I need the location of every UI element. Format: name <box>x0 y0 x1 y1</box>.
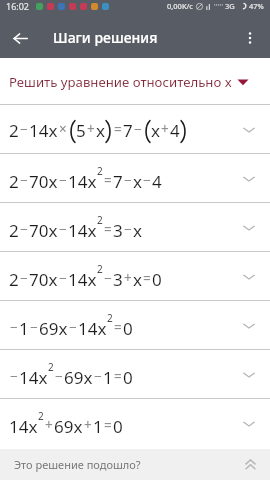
staticText: − <box>20 171 28 189</box>
staticText: 14x <box>68 170 97 193</box>
staticText: − <box>20 120 28 138</box>
staticText: 0 <box>113 415 123 438</box>
staticText: − <box>59 171 67 189</box>
staticText: 14x <box>78 317 107 340</box>
staticText: Это решение подошло? <box>14 457 141 472</box>
button[interactable]: 2 <box>0 154 270 203</box>
staticText: 1 <box>93 415 103 438</box>
staticText: 2 <box>107 311 113 325</box>
staticText: = <box>104 416 112 434</box>
button[interactable]: Это решение подошло? <box>0 449 270 480</box>
button[interactable]: 2 <box>0 203 270 252</box>
button[interactable]: − <box>0 301 270 350</box>
staticText: − <box>69 318 77 336</box>
staticText: = <box>114 367 122 385</box>
staticText: = <box>114 120 122 138</box>
staticText: 16:02 <box>6 0 30 12</box>
staticText: = <box>114 318 122 336</box>
staticText: + <box>161 120 169 138</box>
staticText: 2 <box>9 268 19 291</box>
staticText: − <box>10 367 18 385</box>
staticText: 4 <box>152 170 162 193</box>
staticText: + <box>87 120 95 138</box>
staticText: 0 <box>123 317 133 340</box>
staticText: 14x <box>68 268 97 291</box>
staticText: x <box>133 268 142 291</box>
staticText: − <box>20 220 28 238</box>
staticText: 2 <box>9 219 19 242</box>
staticText: 2 <box>38 409 44 423</box>
staticText: = <box>104 220 112 238</box>
staticText: × <box>59 120 67 138</box>
staticText: − <box>124 220 132 238</box>
staticText: 0 <box>152 268 162 291</box>
staticText: 1 <box>19 317 29 340</box>
staticText: 0 <box>123 366 133 389</box>
staticText: − <box>104 269 112 287</box>
staticText: 2 <box>97 164 103 178</box>
staticText: 2 <box>48 360 54 374</box>
staticText: x <box>151 119 160 142</box>
button[interactable]: Back <box>0 18 40 58</box>
staticText: − <box>20 269 28 287</box>
staticText: 3G <box>225 1 235 11</box>
staticText: 2 <box>97 213 103 227</box>
staticText: − <box>30 318 38 336</box>
staticText: 14x <box>29 119 58 142</box>
staticText: 4 <box>170 119 180 142</box>
staticText: 69x <box>54 415 83 438</box>
staticText: − <box>134 120 142 138</box>
staticText: 14x <box>19 366 48 389</box>
button[interactable]: More options <box>230 18 270 58</box>
staticText: = <box>143 269 151 287</box>
staticText: 1 <box>103 366 113 389</box>
button[interactable]: − <box>0 350 270 399</box>
staticText: 2 <box>9 119 19 142</box>
staticText: + <box>124 269 132 287</box>
staticText: − <box>124 171 132 189</box>
button[interactable]: 2 <box>0 105 270 154</box>
button[interactable]: 2 <box>0 252 270 301</box>
staticText: 69x <box>39 317 68 340</box>
staticText: − <box>59 220 67 238</box>
staticText: 47% <box>249 1 264 11</box>
staticText: 2 <box>97 262 103 276</box>
staticText: 7 <box>113 170 123 193</box>
staticText: 70x <box>29 268 58 291</box>
staticText: Шаги решения <box>53 28 158 47</box>
staticText: 70x <box>29 219 58 242</box>
staticText: − <box>143 171 151 189</box>
button[interactable]: 14x <box>0 399 270 448</box>
staticText: − <box>10 318 18 336</box>
staticText: 14x <box>9 415 38 438</box>
staticText: x <box>96 119 105 142</box>
staticText: + <box>45 416 53 434</box>
staticText: 3 <box>113 268 123 291</box>
staticText: x <box>133 170 142 193</box>
staticText: 7 <box>123 119 133 142</box>
staticText: 69x <box>64 366 93 389</box>
staticText: Решить уравнение относительно x <box>9 73 232 91</box>
staticText: 2 <box>9 170 19 193</box>
staticText: − <box>59 269 67 287</box>
staticText: + <box>84 416 92 434</box>
staticText: x <box>133 219 142 242</box>
staticText: = <box>104 171 112 189</box>
staticText: − <box>94 367 102 385</box>
staticText: 3 <box>113 219 123 242</box>
staticText: − <box>55 367 63 385</box>
staticText: 70x <box>29 170 58 193</box>
staticText: 0,00K/c <box>167 1 193 11</box>
staticText: 14x <box>68 219 97 242</box>
staticText: 5 <box>76 119 86 142</box>
button[interactable]: Решить уравнение относительно x <box>0 58 270 105</box>
